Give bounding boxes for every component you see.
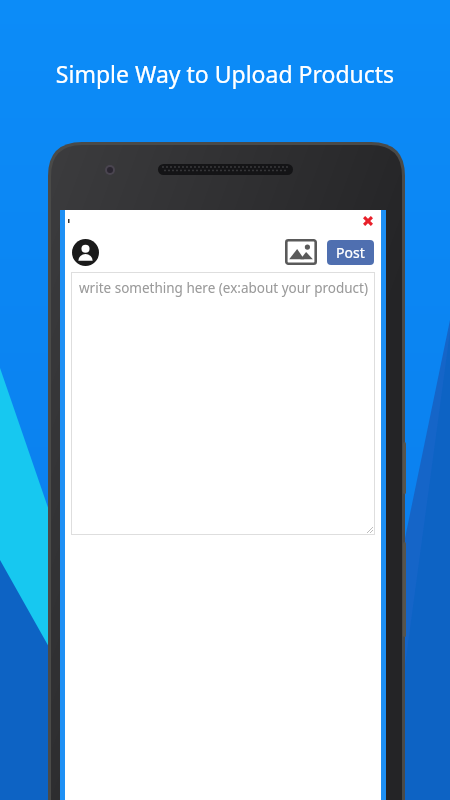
staticText: Post xyxy=(336,243,365,262)
button[interactable]: Profile xyxy=(72,239,99,266)
button[interactable]: Post xyxy=(327,240,374,265)
button[interactable]: Close xyxy=(361,214,375,228)
staticText: write something here (ex:about your prod… xyxy=(79,279,369,297)
button[interactable]: write something here (ex:about your prod… xyxy=(71,272,375,535)
button[interactable]: Add photo xyxy=(285,239,317,265)
staticText: Simple Way to Upload Products xyxy=(0,58,450,89)
